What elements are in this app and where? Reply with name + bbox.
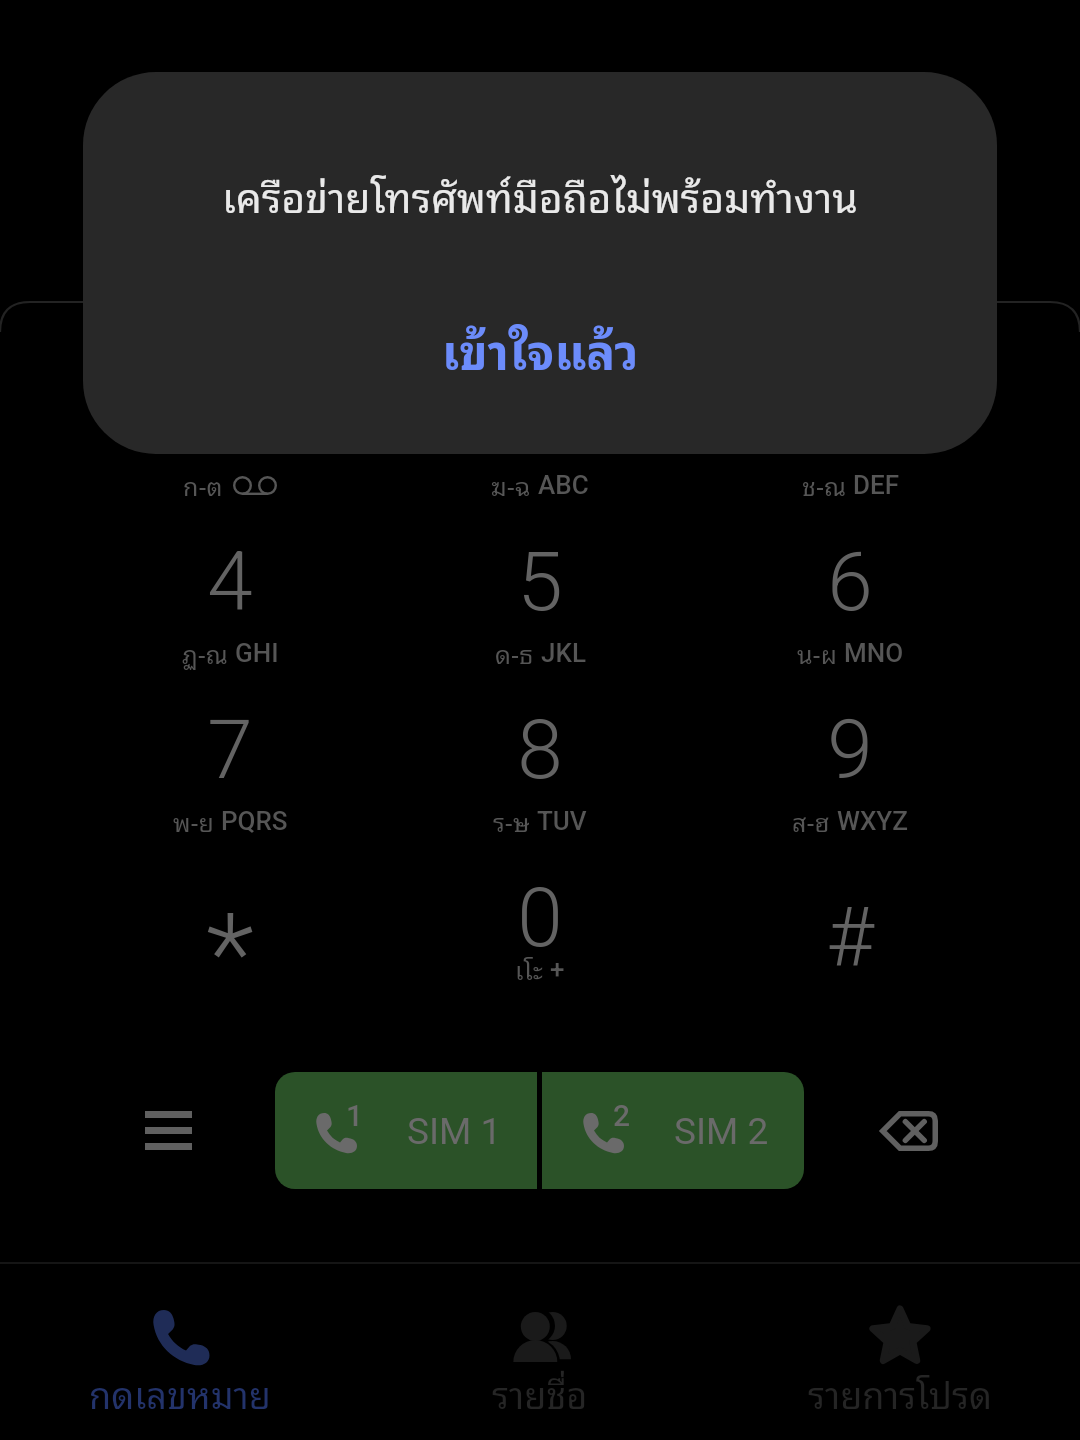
staticText: ด-ธ [495,633,534,673]
button[interactable] [80,688,380,848]
staticText: JKL [541,638,586,668]
button[interactable]: 1 [275,1072,537,1189]
button[interactable]: รายการโปรด [720,1264,1080,1440]
staticText: เโะ [515,949,543,989]
staticText: SIM 2 [674,1110,769,1153]
staticText: น-ผ [797,633,837,673]
button[interactable] [390,856,690,1016]
staticText: TUV [537,806,587,836]
staticText: เครือข่ายโทรศัพท์มือถือไม่พร้อมทำงาน [83,162,997,228]
staticText: PQRS [221,806,288,836]
staticText: 6 [827,534,873,630]
staticText: รายชื่อ [492,1364,588,1422]
staticText: รายการโปรด [808,1364,993,1422]
staticText: พ-ย [173,801,214,841]
staticText: ช-ณ [802,465,846,505]
staticText: ABC [538,470,589,500]
staticText: 1 [346,1098,364,1133]
staticText: WXYZ [837,806,908,836]
staticText: SIM 1 [407,1110,502,1153]
button[interactable]: เข้าใจแล้ว [412,292,669,405]
staticText: # [826,889,874,985]
staticText: 8 [517,702,563,798]
staticText: 4 [207,534,253,630]
staticText: ส-ฮ [792,801,830,841]
button[interactable]: More options [108,1072,228,1189]
button[interactable] [80,352,380,512]
staticText: + [550,954,565,984]
staticText: ฆ-ฉ [491,465,531,505]
staticText: 7 [207,702,253,798]
button[interactable] [700,688,1000,848]
staticText: * [206,888,254,1000]
button[interactable]: รายชื่อ [360,1264,720,1440]
button[interactable] [390,520,690,680]
staticText: 2 [517,366,563,462]
staticText: 1 [207,366,253,462]
staticText: เข้าใจแล้ว [442,310,639,387]
staticText: 2 [613,1098,631,1133]
staticText: 9 [827,702,873,798]
button[interactable] [390,352,690,512]
button[interactable] [80,520,380,680]
staticText: DEF [853,470,899,500]
button[interactable] [390,688,690,848]
button[interactable] [700,352,1000,512]
button[interactable] [80,856,380,1016]
staticText: GHI [235,638,279,668]
button[interactable] [700,520,1000,680]
staticText: กดเลขหมาย [89,1364,271,1422]
staticText: 0 [517,870,563,966]
staticText: 5 [517,534,563,630]
staticText: ก-ต [183,465,223,505]
staticText: 3 [827,366,873,462]
staticText: ฏ-ณ [182,633,228,673]
button[interactable] [700,856,1000,1016]
button[interactable]: Backspace [849,1072,969,1189]
staticText: MNO [844,638,904,668]
button[interactable]: 2 [542,1072,804,1189]
button[interactable]: กดเลขหมาย [0,1264,360,1440]
staticText: ร-ษ [493,801,530,841]
